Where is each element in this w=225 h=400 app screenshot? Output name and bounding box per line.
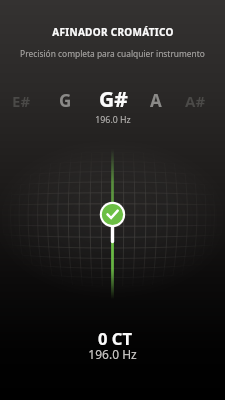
staticText: 196.0 Hz xyxy=(88,346,137,362)
button[interactable]: G# xyxy=(99,85,128,114)
staticText: Precisión completa para cualquier instru… xyxy=(20,48,205,59)
button[interactable]: A# xyxy=(185,91,206,111)
button[interactable]: G xyxy=(59,89,72,112)
staticText: 196.0 Hz xyxy=(95,114,131,126)
button[interactable]: A xyxy=(150,89,162,112)
staticText: AFINADOR CROMÁTICO xyxy=(52,25,174,39)
button[interactable]: E# xyxy=(12,91,31,111)
staticText: 0 CT xyxy=(98,327,132,349)
